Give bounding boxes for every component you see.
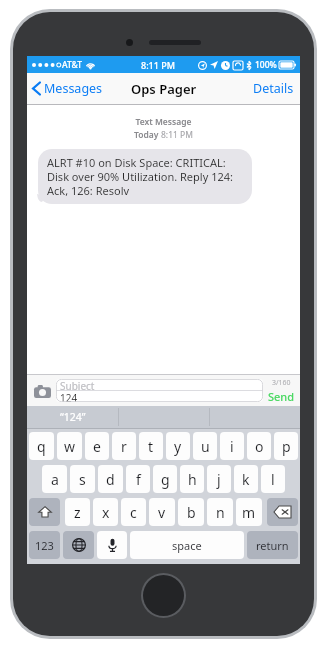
button[interactable]: Messages bbox=[32, 80, 103, 97]
staticText: Send bbox=[268, 389, 295, 404]
button[interactable]: w bbox=[57, 432, 82, 460]
staticText: 8:11 PM bbox=[161, 129, 193, 141]
button[interactable]: Subject bbox=[56, 379, 263, 402]
button[interactable]: z bbox=[65, 498, 90, 526]
staticText: w bbox=[64, 437, 76, 456]
staticText: ALRT #10 on Disk Space: CRITICAL: Disk o… bbox=[47, 155, 243, 198]
staticText: “124” bbox=[60, 410, 86, 424]
staticText: Text Message bbox=[27, 116, 300, 128]
staticText: n bbox=[216, 503, 225, 522]
staticText: u bbox=[201, 437, 210, 456]
button[interactable]: “124” bbox=[27, 406, 118, 428]
staticText: c bbox=[130, 503, 137, 522]
button[interactable]: Camera bbox=[32, 381, 52, 401]
button[interactable]: space bbox=[130, 531, 244, 559]
staticText: e bbox=[93, 437, 101, 456]
staticText: o bbox=[255, 437, 264, 456]
button[interactable]: ALRT #10 on Disk Space: CRITICAL: Disk o… bbox=[38, 149, 252, 204]
staticText: Today bbox=[134, 129, 161, 141]
button[interactable]: g bbox=[153, 465, 177, 493]
button[interactable]: i bbox=[220, 432, 244, 460]
button[interactable]: r bbox=[112, 432, 136, 460]
staticText: b bbox=[187, 503, 196, 522]
staticText: v bbox=[158, 503, 166, 522]
button[interactable]: Details bbox=[253, 80, 294, 97]
staticText: x bbox=[102, 503, 110, 522]
staticText: 124 bbox=[60, 391, 78, 402]
staticText: Subject bbox=[60, 379, 95, 390]
button[interactable]: v bbox=[149, 498, 175, 526]
staticText: a bbox=[51, 470, 59, 489]
button[interactable]: return bbox=[247, 531, 298, 559]
button[interactable]: Backspace bbox=[267, 498, 298, 526]
button[interactable]: d bbox=[98, 465, 123, 493]
staticText: h bbox=[188, 470, 197, 489]
button[interactable]: q bbox=[29, 432, 54, 460]
staticText: l bbox=[271, 470, 275, 489]
button[interactable]: Shift bbox=[29, 498, 60, 526]
staticText: q bbox=[37, 437, 46, 456]
button[interactable]: l bbox=[261, 465, 285, 493]
staticText: d bbox=[106, 470, 115, 489]
button[interactable]: t bbox=[139, 432, 163, 460]
button[interactable]: m bbox=[236, 498, 262, 526]
staticText: AT&T bbox=[62, 59, 83, 71]
staticText: s bbox=[79, 470, 86, 489]
staticText: p bbox=[282, 437, 291, 456]
staticText: r bbox=[121, 437, 127, 456]
button[interactable]: Dictate bbox=[97, 531, 127, 559]
button[interactable]: o bbox=[247, 432, 271, 460]
staticText: y bbox=[174, 437, 182, 456]
button[interactable]: 3/160 bbox=[267, 378, 295, 404]
staticText: z bbox=[74, 503, 81, 522]
staticText: 100% bbox=[255, 59, 277, 71]
button[interactable]: y bbox=[166, 432, 190, 460]
button[interactable]: u bbox=[193, 432, 217, 460]
button[interactable]: n bbox=[207, 498, 233, 526]
button[interactable]: b bbox=[178, 498, 204, 526]
staticText: t bbox=[148, 437, 154, 456]
staticText: 3/160 bbox=[272, 378, 291, 388]
staticText: m bbox=[242, 503, 256, 522]
button[interactable]: p bbox=[274, 432, 298, 460]
button[interactable]: c bbox=[121, 498, 146, 526]
staticText: 8:11 PM bbox=[141, 59, 175, 71]
button[interactable]: f bbox=[126, 465, 150, 493]
button[interactable]: Home bbox=[141, 573, 186, 618]
staticText: k bbox=[242, 470, 250, 489]
button[interactable]: Change keyboard bbox=[63, 531, 94, 559]
button[interactable]: j bbox=[207, 465, 231, 493]
staticText: f bbox=[136, 470, 141, 489]
staticText: g bbox=[161, 470, 170, 489]
staticText: i bbox=[230, 437, 234, 456]
staticText: return bbox=[256, 538, 289, 553]
staticText: j bbox=[217, 470, 221, 489]
button[interactable]: a bbox=[42, 465, 67, 493]
button[interactable]: Numbers bbox=[29, 531, 60, 559]
button[interactable]: k bbox=[234, 465, 258, 493]
button[interactable]: s bbox=[70, 465, 95, 493]
staticText: Messages bbox=[44, 80, 103, 97]
button[interactable]: h bbox=[180, 465, 204, 493]
staticText: 123 bbox=[35, 538, 54, 553]
button[interactable]: e bbox=[85, 432, 109, 460]
button[interactable]: x bbox=[93, 498, 118, 526]
staticText: Ops Pager bbox=[131, 80, 197, 98]
staticText: space bbox=[172, 538, 202, 553]
